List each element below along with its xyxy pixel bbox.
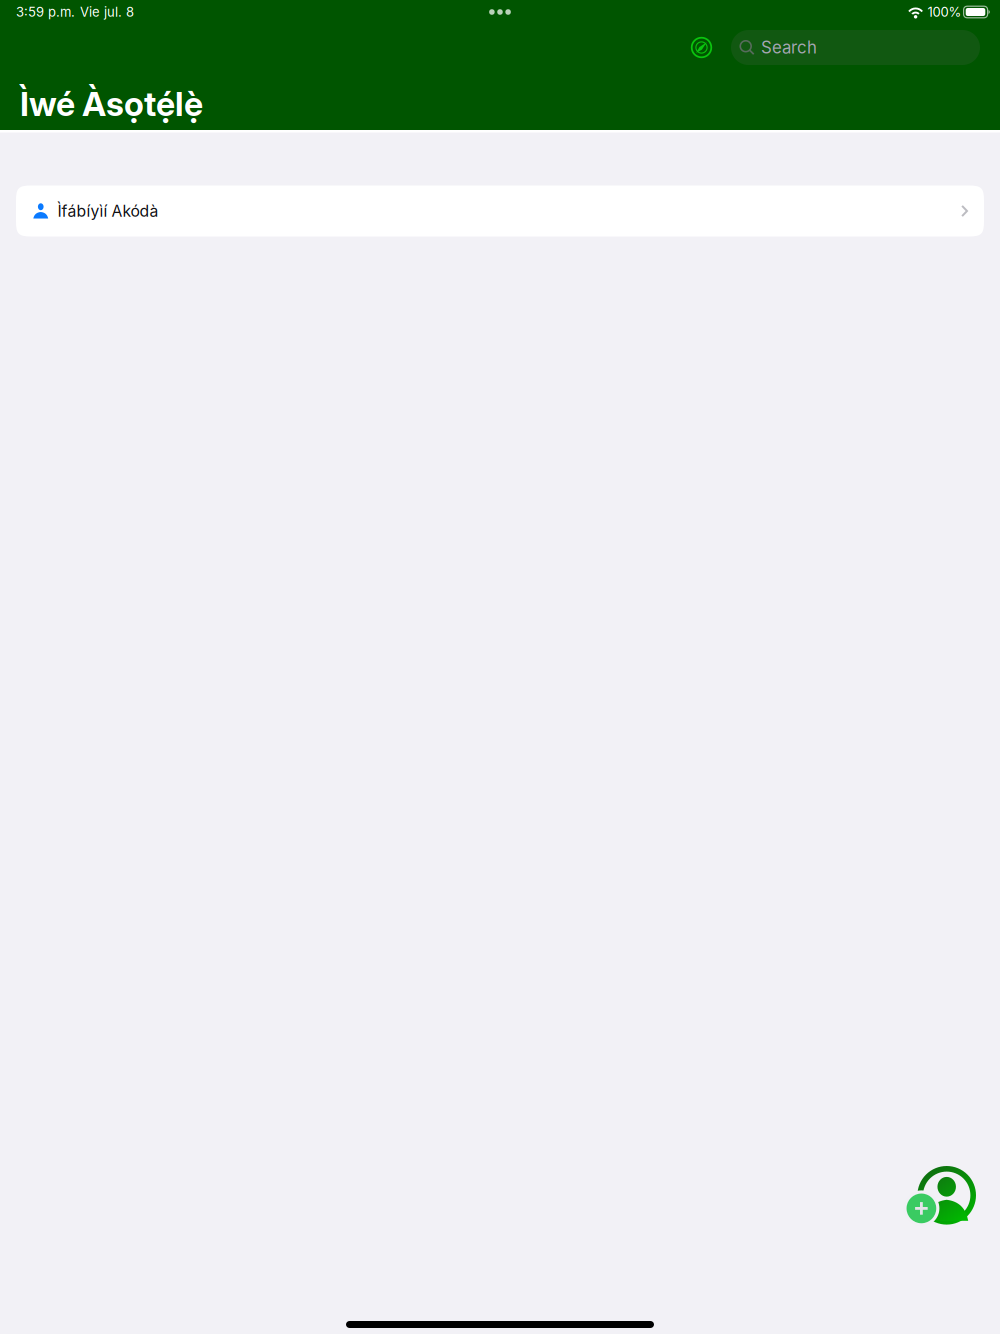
staticText: 3:59 p.m. bbox=[16, 4, 75, 20]
staticText: 100% bbox=[928, 4, 962, 20]
button[interactable]: Ìfábíyìí Akódà bbox=[16, 185, 984, 236]
staticText: Ìfábíyìí Akódà bbox=[57, 201, 158, 220]
staticText: Ìwé Àsọtẹ́lẹ̀ bbox=[20, 84, 203, 124]
button[interactable]: Compass bbox=[688, 30, 715, 65]
button[interactable]: Add person bbox=[896, 1166, 976, 1226]
staticText: Search bbox=[761, 37, 817, 58]
button[interactable]: Search bbox=[731, 30, 980, 65]
staticText: Vie jul. 8 bbox=[80, 4, 134, 20]
